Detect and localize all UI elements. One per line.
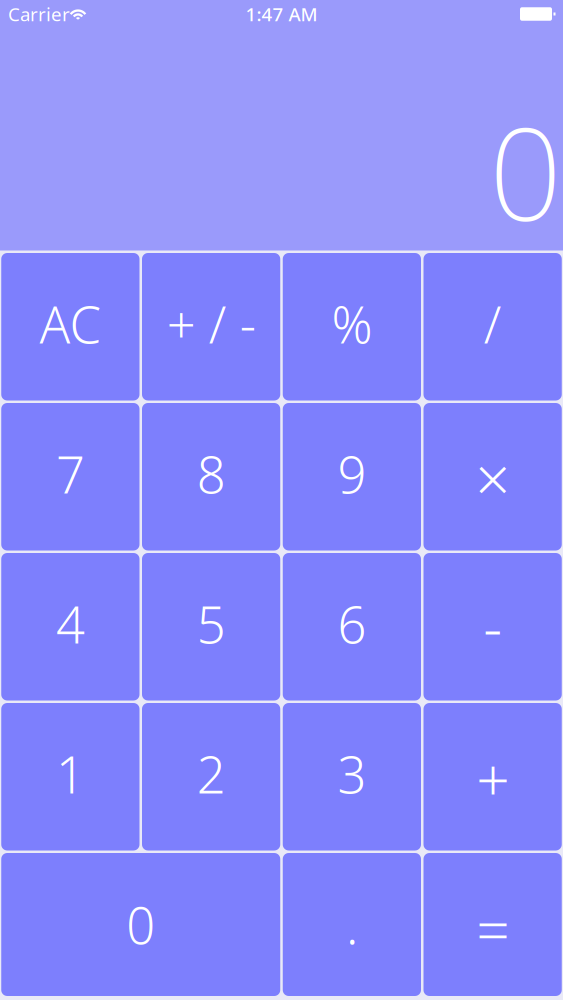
staticText: 2 bbox=[197, 740, 226, 807]
button[interactable]: 4 bbox=[1, 553, 139, 700]
button[interactable]: 7 bbox=[1, 403, 139, 550]
staticText: 1:47 AM bbox=[245, 2, 317, 26]
staticText: AC bbox=[39, 290, 101, 357]
staticText: - bbox=[483, 587, 502, 665]
staticText: × bbox=[475, 437, 510, 518]
staticText: % bbox=[331, 290, 372, 357]
staticText: 8 bbox=[197, 440, 226, 507]
staticText: 1 bbox=[56, 740, 85, 807]
staticText: 9 bbox=[337, 440, 366, 507]
staticText: + / - bbox=[167, 290, 256, 357]
button[interactable]: % bbox=[283, 253, 421, 400]
staticText: 7 bbox=[56, 440, 85, 507]
staticText: 3 bbox=[337, 740, 366, 807]
staticText: = bbox=[476, 889, 509, 967]
staticText: 6 bbox=[337, 590, 366, 657]
button[interactable]: = bbox=[423, 853, 562, 996]
staticText: 5 bbox=[197, 590, 226, 657]
button[interactable]: / bbox=[423, 253, 562, 400]
button[interactable]: - bbox=[423, 553, 562, 700]
button[interactable]: 3 bbox=[283, 703, 421, 850]
staticText: 4 bbox=[56, 590, 85, 657]
button[interactable]: × bbox=[423, 403, 562, 550]
staticText: / bbox=[484, 290, 502, 357]
staticText: Carrier bbox=[8, 2, 70, 26]
button[interactable]: 2 bbox=[142, 703, 280, 850]
button[interactable]: AC bbox=[1, 253, 139, 400]
button[interactable]: 6 bbox=[283, 553, 421, 700]
button[interactable]: 8 bbox=[142, 403, 280, 550]
button[interactable]: + / - bbox=[142, 253, 280, 400]
staticText: . bbox=[346, 891, 358, 958]
staticText: + bbox=[476, 740, 509, 818]
button[interactable]: 1 bbox=[1, 703, 139, 850]
staticText: 0 bbox=[126, 891, 155, 958]
button[interactable]: + bbox=[423, 703, 562, 850]
button[interactable]: 9 bbox=[283, 403, 421, 550]
button[interactable]: 0 bbox=[1, 853, 280, 996]
button[interactable]: . bbox=[283, 853, 421, 996]
staticText: 0 bbox=[489, 86, 562, 256]
button[interactable]: 5 bbox=[142, 553, 280, 700]
